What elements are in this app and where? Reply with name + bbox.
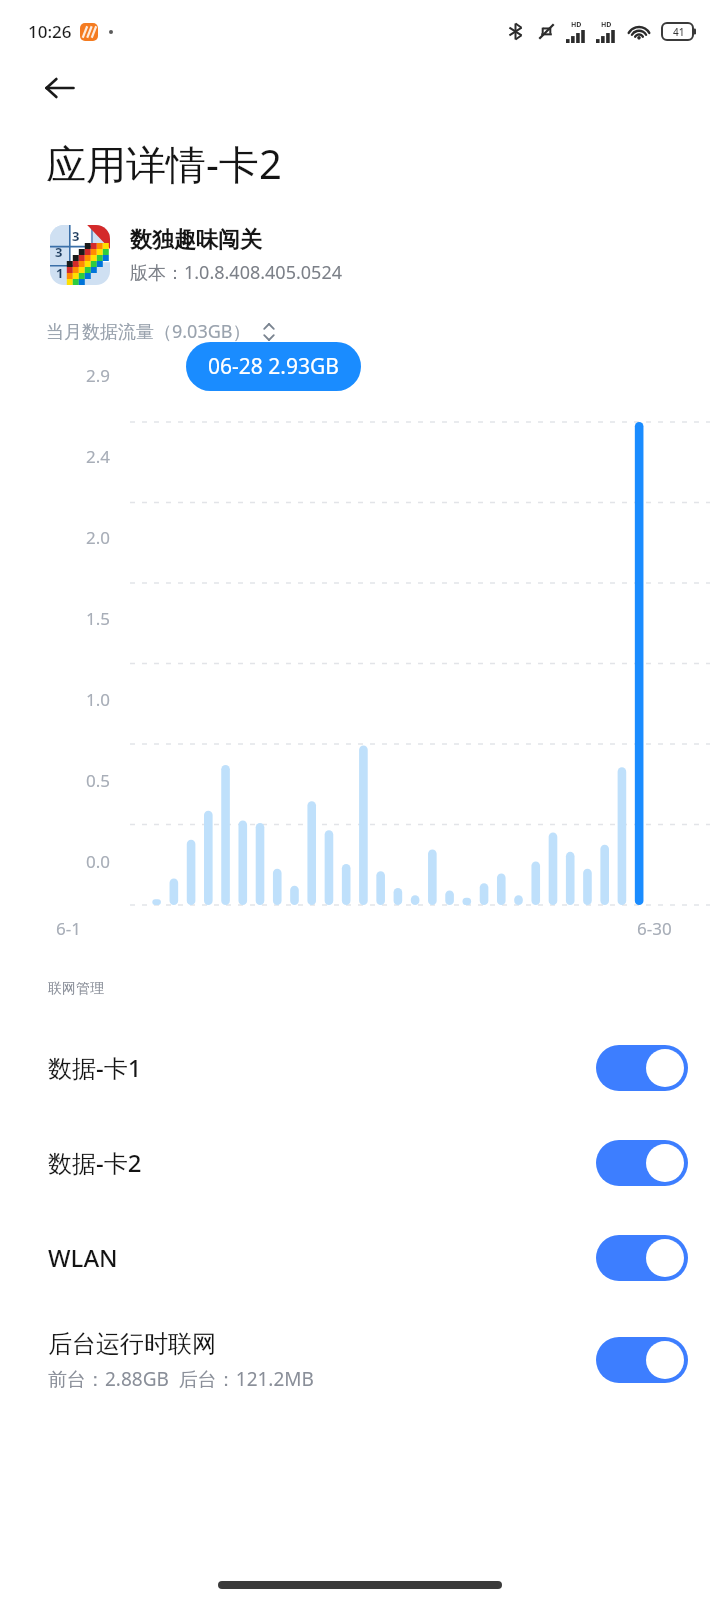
button[interactable]: 06-28 2.93GB bbox=[186, 342, 361, 391]
staticText: 41 bbox=[673, 25, 685, 39]
button[interactable]: Back bbox=[34, 62, 86, 114]
staticText: 当月数据流量（9.03GB） bbox=[46, 319, 251, 344]
staticText: 应用详情-卡2 bbox=[46, 136, 282, 191]
staticText: 数据-卡2 bbox=[48, 1146, 142, 1179]
staticText: 2.0 bbox=[86, 526, 111, 549]
staticText: 数独趣味闯关 bbox=[130, 226, 262, 254]
button[interactable]: 后台运行时联网 bbox=[0, 1305, 720, 1415]
button[interactable]: Toggle on bbox=[596, 1337, 688, 1383]
staticText: WLAN bbox=[48, 1241, 118, 1274]
button[interactable]: Toggle on bbox=[596, 1045, 688, 1091]
staticText: 3 bbox=[55, 243, 63, 261]
staticText: 1.5 bbox=[86, 607, 111, 630]
staticText: 6-30 bbox=[637, 917, 672, 940]
staticText: 前台：2.88GB 后台：121.2MB bbox=[48, 1366, 314, 1392]
staticText: HD bbox=[601, 20, 612, 30]
staticText: 联网管理 bbox=[48, 980, 104, 998]
staticText: 版本：1.0.8.408.405.0524 bbox=[130, 260, 342, 285]
button[interactable]: 数据-卡2 bbox=[0, 1115, 720, 1210]
staticText: 6-1 bbox=[56, 917, 81, 940]
staticText: 10:26 bbox=[28, 20, 72, 43]
staticText: 1.0 bbox=[86, 688, 111, 711]
staticText: 2.4 bbox=[86, 445, 111, 468]
staticText: 0.0 bbox=[86, 850, 111, 873]
staticText: 1 bbox=[56, 264, 64, 282]
button[interactable]: Toggle on bbox=[596, 1235, 688, 1281]
staticText: HD bbox=[571, 20, 582, 30]
staticText: 后台运行时联网 bbox=[48, 1329, 216, 1359]
button[interactable]: Toggle on bbox=[596, 1140, 688, 1186]
button[interactable]: 当月数据流量（9.03GB） bbox=[46, 319, 277, 344]
staticText: 0.5 bbox=[86, 769, 111, 792]
staticText: 3 bbox=[72, 227, 80, 245]
staticText: 06-28 2.93GB bbox=[208, 352, 339, 381]
staticText: 2.9 bbox=[86, 364, 111, 387]
button[interactable]: WLAN bbox=[0, 1210, 720, 1305]
button[interactable]: 数据-卡1 bbox=[0, 1020, 720, 1115]
staticText: 数据-卡1 bbox=[48, 1051, 142, 1084]
